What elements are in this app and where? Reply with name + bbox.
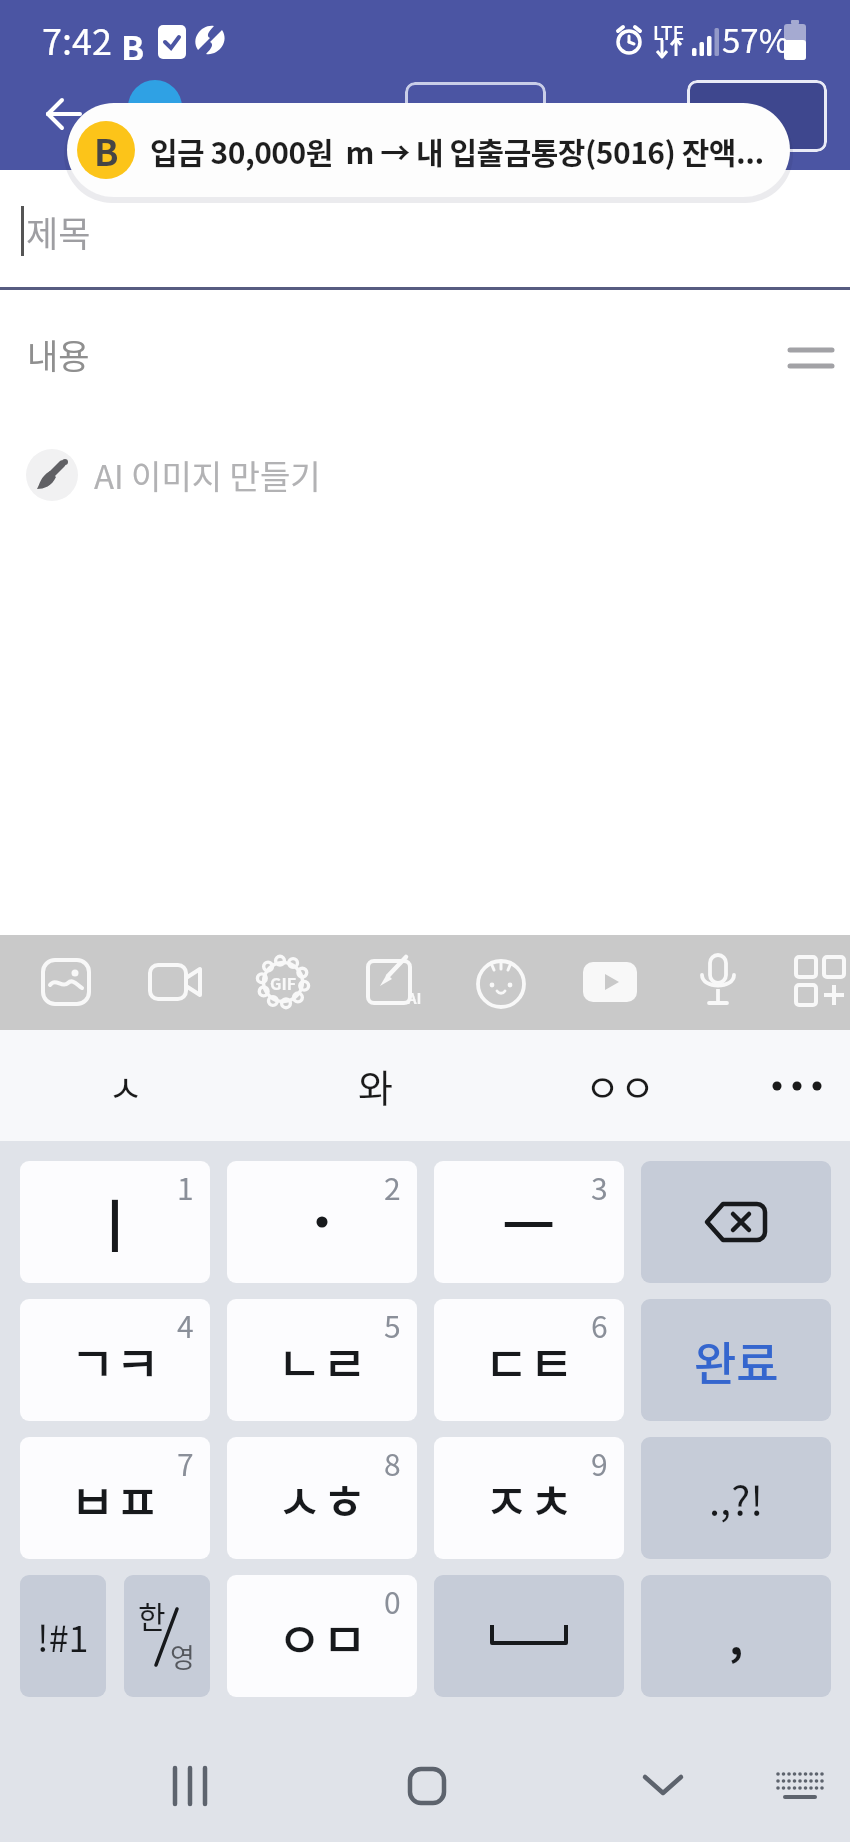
staticText: 제목 (26, 206, 91, 256)
button[interactable]: ㅣ (20, 1161, 210, 1283)
staticText: ㅇㅇ (585, 1058, 655, 1113)
button[interactable]: , (641, 1575, 831, 1697)
staticText: ㅅ (108, 1058, 143, 1113)
button[interactable] (474, 955, 528, 1009)
staticText: 0 (384, 1579, 401, 1622)
staticText: ㄱㅋ (70, 1325, 161, 1396)
button[interactable]: ㄱㅋ (20, 1299, 210, 1421)
button[interactable] (737, 1040, 850, 1131)
staticText: 와 (358, 1058, 393, 1113)
staticText: 57% (722, 15, 790, 63)
staticText: 1 (177, 1165, 194, 1208)
button[interactable]: 와 (315, 1040, 435, 1131)
staticText: ㅂㅍ (70, 1463, 161, 1534)
staticText: 7:42 (42, 13, 112, 65)
button[interactable] (613, 1755, 713, 1817)
staticText: ㅈㅊ (484, 1463, 575, 1534)
staticText: 완료 (694, 1327, 779, 1394)
staticText: 6 (591, 1303, 608, 1346)
staticText: LTE (653, 18, 685, 42)
button[interactable] (697, 953, 739, 1011)
button[interactable] (750, 1755, 850, 1817)
button[interactable] (0, 300, 850, 920)
button[interactable]: B (67, 103, 790, 197)
staticText: ㅡ (502, 1180, 556, 1264)
staticText: ㅣ (88, 1180, 142, 1264)
staticText: 한 (138, 1593, 166, 1636)
staticText: 2 (384, 1165, 401, 1208)
staticText: 4 (177, 1303, 194, 1346)
staticText: ㅅㅎ (277, 1463, 368, 1534)
button[interactable] (641, 1161, 831, 1283)
button[interactable]: ㅅ (65, 1040, 185, 1131)
button[interactable]: .,?! (641, 1437, 831, 1559)
staticText: ㄴㄹ (277, 1325, 368, 1396)
button[interactable] (148, 957, 204, 1007)
button[interactable]: ㄴㄹ (227, 1299, 417, 1421)
button[interactable]: 한 (124, 1575, 210, 1697)
button[interactable]: ㄷㅌ (434, 1299, 624, 1421)
staticText: ㄷㅌ (484, 1325, 575, 1396)
staticText: B (121, 22, 145, 60)
button[interactable]: ㅅㅎ (227, 1437, 417, 1559)
button[interactable]: ㅡ (434, 1161, 624, 1283)
staticText: 8 (384, 1441, 401, 1484)
button[interactable] (687, 80, 827, 152)
staticText: 9 (591, 1441, 608, 1484)
staticText: .,?! (709, 1469, 764, 1527)
staticText: 5 (384, 1303, 401, 1346)
staticText: 입금 30,000원 m → 내 입출금통장(5016) 잔액... (150, 129, 764, 172)
button[interactable] (38, 88, 90, 140)
staticText: 영 (170, 1637, 195, 1676)
button[interactable] (794, 955, 850, 1009)
staticText: B (94, 124, 119, 176)
staticText: AI (407, 987, 422, 1009)
button[interactable]: ㅇㅁ (227, 1575, 417, 1697)
button[interactable] (405, 82, 546, 152)
button[interactable]: ㅈㅊ (434, 1437, 624, 1559)
button[interactable]: !#1 (20, 1575, 106, 1697)
button[interactable]: GIF (256, 955, 310, 1009)
button[interactable] (140, 1755, 240, 1817)
staticText: 3 (591, 1165, 608, 1208)
staticText: 내용 (27, 330, 90, 376)
button[interactable]: ㅇㅇ (560, 1040, 680, 1131)
button[interactable]: AI (366, 955, 422, 1009)
button[interactable] (40, 955, 94, 1009)
button[interactable]: ㅂㅍ (20, 1437, 210, 1559)
staticText: 7 (177, 1441, 194, 1484)
staticText: !#1 (37, 1610, 89, 1662)
staticText: , (729, 1604, 744, 1668)
button[interactable] (583, 962, 637, 1002)
button[interactable] (788, 342, 834, 378)
staticText: ㅇㅁ (277, 1601, 368, 1672)
button[interactable] (434, 1575, 624, 1697)
button[interactable] (377, 1755, 477, 1817)
button[interactable]: AI 이미지 만들기 (26, 449, 366, 501)
staticText: AI 이미지 만들기 (94, 451, 321, 499)
staticText: GIF (270, 971, 297, 994)
button[interactable]: 완료 (641, 1299, 831, 1421)
button[interactable]: 2 (227, 1161, 417, 1283)
